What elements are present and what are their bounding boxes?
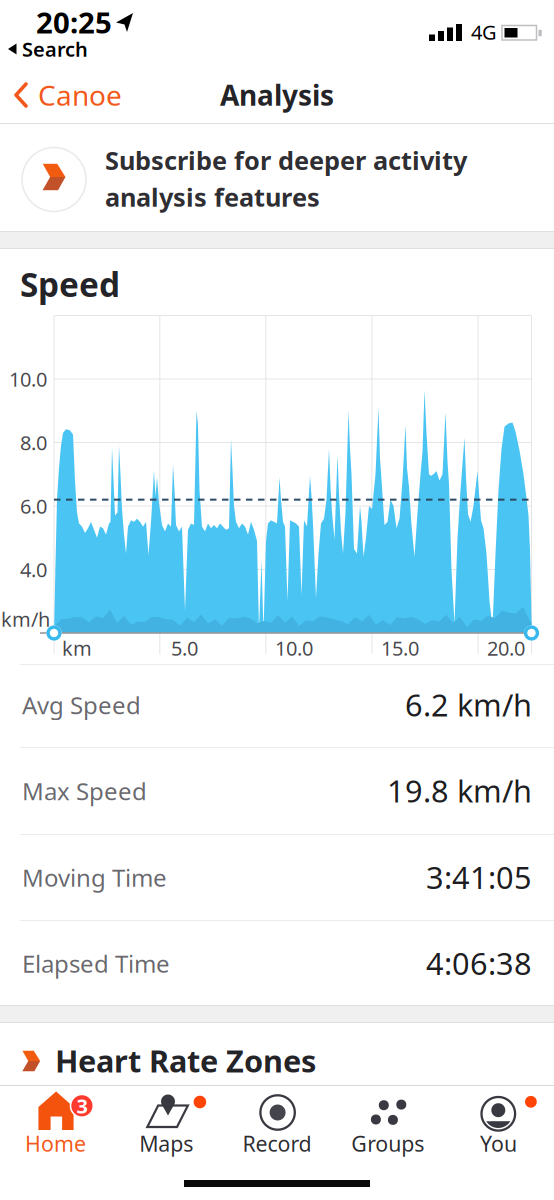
staticText: Canoe bbox=[38, 76, 122, 114]
staticText: Avg Speed bbox=[22, 689, 141, 721]
staticText: You bbox=[480, 1129, 517, 1158]
staticText: Max Speed bbox=[22, 775, 147, 807]
staticText: 6.0 bbox=[20, 493, 47, 519]
staticText: 4G bbox=[471, 19, 497, 45]
button[interactable]: You bbox=[444, 1086, 554, 1158]
button[interactable]: Groups bbox=[333, 1086, 443, 1158]
staticText: Record bbox=[242, 1129, 311, 1158]
button[interactable]: 3 bbox=[0, 1086, 110, 1158]
staticText: Heart Rate Zones bbox=[55, 1040, 316, 1081]
staticText: 20.0 bbox=[487, 635, 525, 661]
button[interactable]: Subscribe for deeper activity analysis f… bbox=[0, 124, 554, 230]
staticText: 3 bbox=[76, 1092, 87, 1119]
staticText: 8.0 bbox=[20, 429, 47, 456]
staticText: Speed bbox=[20, 262, 120, 306]
staticText: Elapsed Time bbox=[22, 948, 170, 979]
staticText: Analysis bbox=[220, 76, 334, 114]
staticText: 4:06:38 bbox=[426, 943, 532, 983]
staticText: 10.0 bbox=[275, 635, 313, 661]
button[interactable]: Record bbox=[222, 1086, 332, 1158]
staticText: km/h bbox=[1, 606, 50, 632]
staticText: 6.2 km/h bbox=[405, 684, 532, 725]
staticText: 10.0 bbox=[9, 366, 47, 392]
staticText: 5.0 bbox=[171, 635, 198, 661]
staticText: Moving Time bbox=[22, 862, 167, 893]
staticText: Search bbox=[22, 36, 88, 62]
staticText: 15.0 bbox=[381, 635, 419, 661]
staticText: Maps bbox=[139, 1129, 193, 1158]
staticText: 19.8 km/h bbox=[387, 770, 532, 811]
button[interactable]: Canoe bbox=[0, 73, 150, 117]
button[interactable]: Maps bbox=[111, 1086, 221, 1158]
staticText: Home bbox=[25, 1129, 86, 1158]
staticText: 4.0 bbox=[20, 556, 47, 583]
staticText: 3:41:05 bbox=[426, 857, 532, 897]
staticText: 20:25 bbox=[36, 2, 112, 41]
staticText: Groups bbox=[351, 1129, 424, 1158]
staticText: Subscribe for deeper activity analysis f… bbox=[105, 143, 467, 214]
staticText: km bbox=[62, 635, 92, 661]
